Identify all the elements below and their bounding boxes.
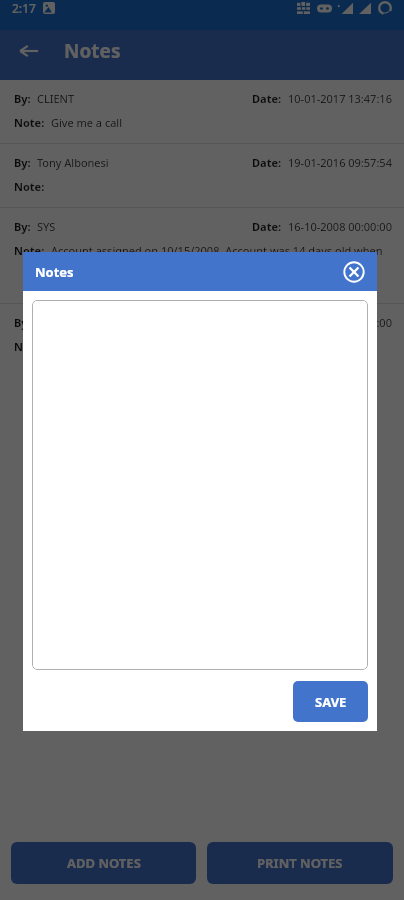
staticText: 2:17: [12, 0, 36, 16]
staticText: SAVE: [315, 693, 347, 711]
staticText: SYS: [37, 219, 56, 234]
staticText: has a self reported value of $1,200.00 a…: [51, 275, 318, 290]
staticText: Tony Albonesi: [37, 155, 109, 170]
staticText: Note:: [14, 179, 45, 194]
staticText: Date:: [252, 91, 282, 106]
button[interactable]: By:: [0, 304, 404, 384]
staticText: Notes: [64, 38, 121, 64]
staticText: 16-10-2008 00:00:00: [288, 219, 392, 234]
button[interactable]: Close: [339, 257, 369, 287]
staticText: Notes: [35, 263, 74, 281]
staticText: Date:: [252, 155, 282, 170]
staticText: PRINT NOTES: [257, 854, 343, 872]
button[interactable]: PRINT NOTES: [207, 842, 393, 884]
button[interactable]: ADD NOTES: [11, 842, 196, 884]
staticText: By:: [14, 315, 31, 330]
button[interactable]: SAVE: [293, 681, 368, 722]
button[interactable]: By:: [0, 144, 404, 207]
staticText: By:: [14, 91, 31, 106]
staticText: 10-01-2017 13:47:16: [288, 91, 392, 106]
staticText: Note:: [14, 339, 45, 354]
staticText: By:: [14, 219, 31, 234]
staticText: ADD NOTES: [67, 854, 141, 872]
button[interactable]: By:: [0, 208, 404, 303]
staticText: Note:: [14, 243, 45, 258]
button[interactable]: By:: [0, 80, 404, 143]
staticText: 19-01-2016 09:57:54: [288, 155, 392, 170]
button[interactable]: Note text field: [32, 300, 368, 670]
staticText: Account assigned on 10/15/2008. Account …: [51, 243, 392, 273]
staticText: Date:: [252, 219, 282, 234]
staticText: 16-10-2008 00:00:00: [288, 315, 392, 330]
staticText: Note:: [14, 115, 45, 130]
button[interactable]: Back: [8, 30, 50, 72]
staticText: CLIENT: [37, 91, 75, 106]
staticText: Give me a call: [51, 115, 123, 130]
staticText: By:: [14, 155, 31, 170]
